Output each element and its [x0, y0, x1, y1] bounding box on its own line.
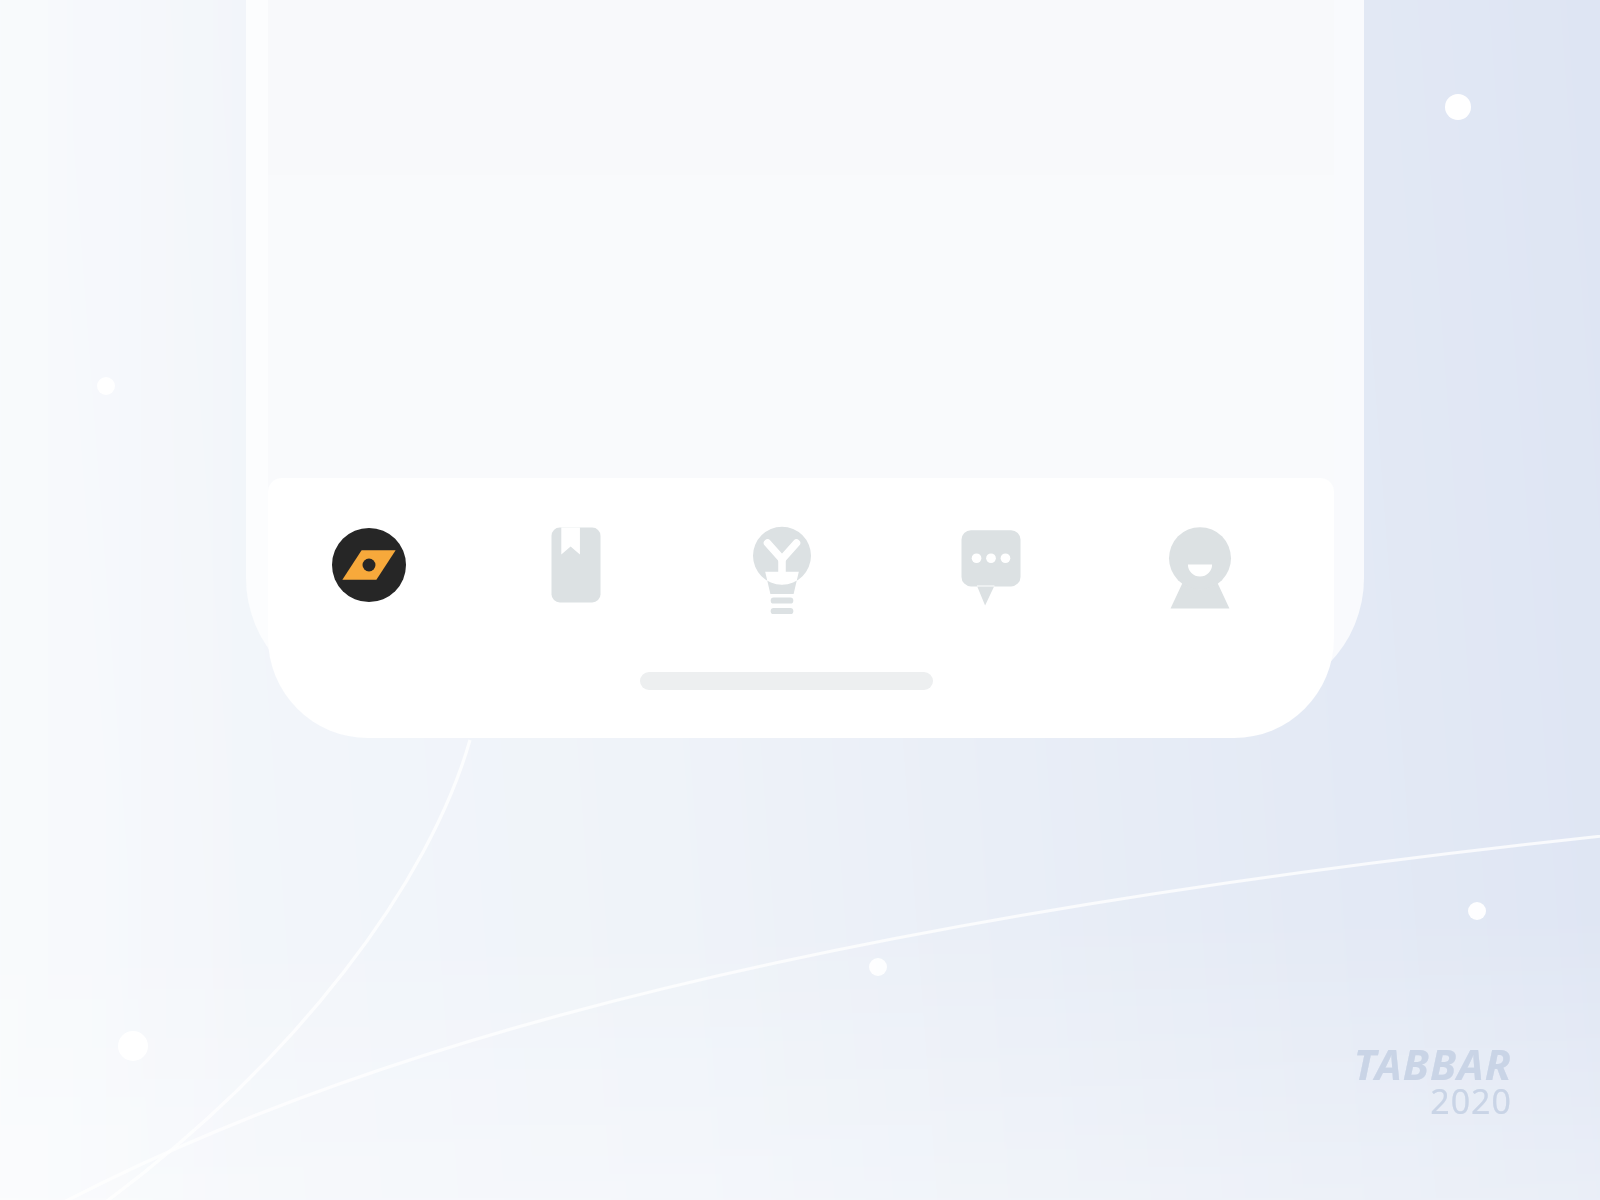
- button[interactable]: Ideas: [682, 490, 882, 640]
- button[interactable]: Profile: [1100, 490, 1300, 640]
- staticText: TABBAR: [1100, 1035, 1512, 1093]
- staticText: 2020: [1100, 1078, 1512, 1130]
- button[interactable]: Messages: [891, 490, 1091, 640]
- button[interactable]: Library: [476, 490, 676, 640]
- button[interactable]: Explore: [269, 490, 469, 640]
